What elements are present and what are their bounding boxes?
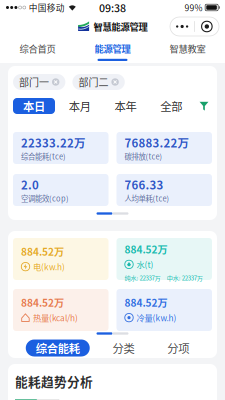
staticText: 884.52万 (21, 295, 64, 310)
staticText: 本日 (23, 98, 45, 114)
button[interactable]: 部门二 (72, 74, 125, 90)
staticText: 部门二 (78, 75, 108, 89)
button[interactable]: 综合首页 (0, 38, 75, 63)
staticText: 中水: 22337万 (167, 273, 203, 282)
staticText: 884.52万 (124, 242, 167, 256)
staticText: 热量(kcal/h) (33, 312, 78, 324)
staticText: 部门一 (19, 75, 49, 89)
staticText: 空调能效(cop) (21, 193, 69, 204)
staticText: 884.52万 (21, 244, 64, 259)
staticText: 综合能耗 (36, 340, 80, 356)
staticText: 全部 (160, 98, 182, 114)
staticText: 76883.22万 (124, 134, 188, 151)
staticText: 分类 (112, 340, 134, 356)
staticText: 能耗趋势分析 (15, 372, 93, 390)
staticText: 本年 (114, 98, 136, 114)
button[interactable]: 分项 (157, 339, 199, 356)
staticText: 884.52万 (124, 295, 167, 310)
staticText: 22333.22万 (21, 134, 85, 151)
button[interactable]: Filter (196, 98, 212, 114)
staticText: 99% (184, 1, 202, 14)
button[interactable]: 本月 (59, 98, 101, 114)
button[interactable]: More options (170, 17, 219, 36)
staticText: 纯水: 22337万 (124, 273, 160, 282)
staticText: 电(kw.h) (33, 261, 65, 273)
staticText: 中国移动 (29, 1, 65, 14)
staticText: 人均单耗(tce) (124, 193, 169, 204)
staticText: 能源管理 (94, 42, 130, 55)
staticText: 智慧能源管理 (93, 20, 147, 33)
staticText: 2.0 (21, 176, 39, 193)
staticText: 碳排放(tce) (124, 151, 162, 162)
button[interactable]: 本年 (104, 98, 146, 114)
button[interactable]: 分类 (102, 339, 144, 356)
staticText: 水(t) (136, 258, 153, 270)
button[interactable]: 综合能耗 (26, 339, 90, 356)
button[interactable]: 部门一 (13, 74, 65, 90)
staticText: 综合能耗(tce) (21, 151, 66, 162)
button[interactable]: 全部 (150, 98, 192, 114)
staticText: 分项 (167, 340, 189, 356)
staticText: 冷量(kw.h) (136, 312, 176, 324)
staticText: 智慧教室 (169, 42, 205, 55)
button[interactable]: 本日 (13, 98, 55, 114)
button[interactable]: 同比 (15, 399, 37, 400)
staticText: 766.33 (124, 176, 163, 193)
button[interactable]: 能源管理 (75, 38, 150, 63)
staticText: 09:38 (99, 0, 126, 15)
button[interactable]: 智慧教室 (150, 38, 225, 63)
staticText: 综合首页 (19, 42, 55, 55)
staticText: 本月 (69, 98, 91, 114)
